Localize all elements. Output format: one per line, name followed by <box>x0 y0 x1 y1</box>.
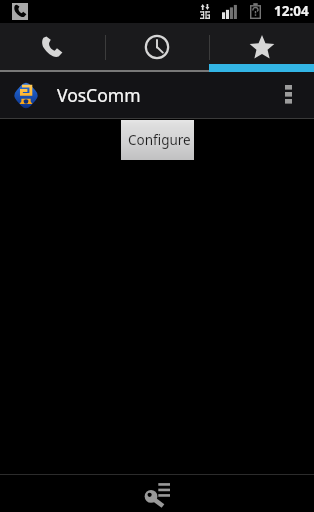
button[interactable]: Favorites <box>209 23 314 72</box>
button[interactable]: Configure <box>121 120 194 160</box>
button[interactable]: Recents <box>104 23 209 72</box>
button[interactable]: Manage accounts <box>137 475 177 512</box>
staticText: 12:04 <box>274 2 309 20</box>
button[interactable]: More options <box>262 72 314 119</box>
button[interactable]: Dialer <box>0 23 104 72</box>
staticText: VosComm <box>57 83 141 107</box>
staticText: Configure <box>128 131 191 149</box>
